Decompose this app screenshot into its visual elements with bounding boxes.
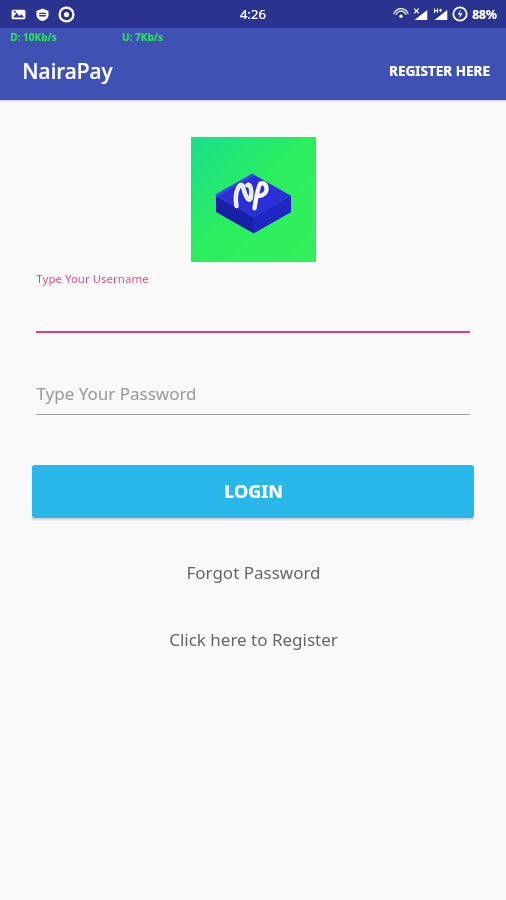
staticText: 4:26 — [240, 5, 266, 23]
staticText: REGISTER HERE — [389, 62, 490, 80]
staticText: Click here to Register — [169, 628, 338, 651]
staticText: Type Your Password — [36, 382, 197, 405]
button[interactable]: Forgot Password — [162, 553, 345, 592]
button[interactable]: Type Your Password — [0, 382, 506, 415]
button[interactable]: LOGIN — [32, 465, 474, 518]
staticText: NairaPay — [22, 57, 113, 86]
staticText: Type Your Username — [36, 271, 149, 287]
staticText: Forgot Password — [186, 561, 321, 584]
staticText: U: 7Kb/s — [122, 30, 163, 44]
staticText: LOGIN — [224, 479, 283, 504]
staticText: D: 10Kb/s — [10, 30, 57, 44]
staticText: 88% — [472, 6, 497, 22]
button[interactable]: REGISTER HERE — [373, 54, 506, 88]
button[interactable]: Type Your Username — [0, 271, 506, 333]
button[interactable]: Click here to Register — [145, 620, 362, 659]
